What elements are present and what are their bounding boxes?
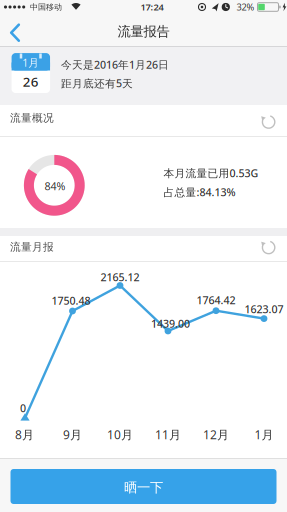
staticText: 1月 [22,55,39,70]
staticText: 1623.07 [244,302,283,316]
staticText: 0 [20,401,26,415]
staticText: 今天是2016年1月26日 [61,57,169,72]
staticText: 17:24 [140,1,163,13]
staticText: 占总量:84.13% [163,185,235,199]
staticText: 1750.48 [51,293,90,308]
staticText: 本月流量已用0.53G [163,166,258,180]
staticText: 1764.42 [196,293,235,307]
staticText: 9月 [63,426,82,442]
button[interactable]: 晒一下 [10,469,276,504]
staticText: 流量月报 [10,240,54,253]
staticText: 距月底还有5天 [61,76,133,90]
staticText: 11月 [155,426,181,442]
staticText: 流量概况 [10,111,54,124]
staticText: 32% [236,1,254,13]
staticText: 1月 [254,426,273,442]
staticText: 2165.12 [100,270,139,284]
button[interactable]: 返回 [1,14,31,48]
button[interactable]: 刷新流量概况 [256,109,282,135]
staticText: 中国移动 [30,2,62,12]
staticText: 晒一下 [124,479,163,496]
staticText: 26 [23,73,39,90]
staticText: 1439.00 [151,316,190,331]
staticText: 流量报告 [117,23,169,40]
staticText: 12月 [203,426,229,442]
staticText: 84% [44,179,65,193]
button[interactable]: 刷新流量月报 [256,234,282,260]
staticText: 10月 [107,426,133,442]
staticText: 8月 [15,426,34,442]
